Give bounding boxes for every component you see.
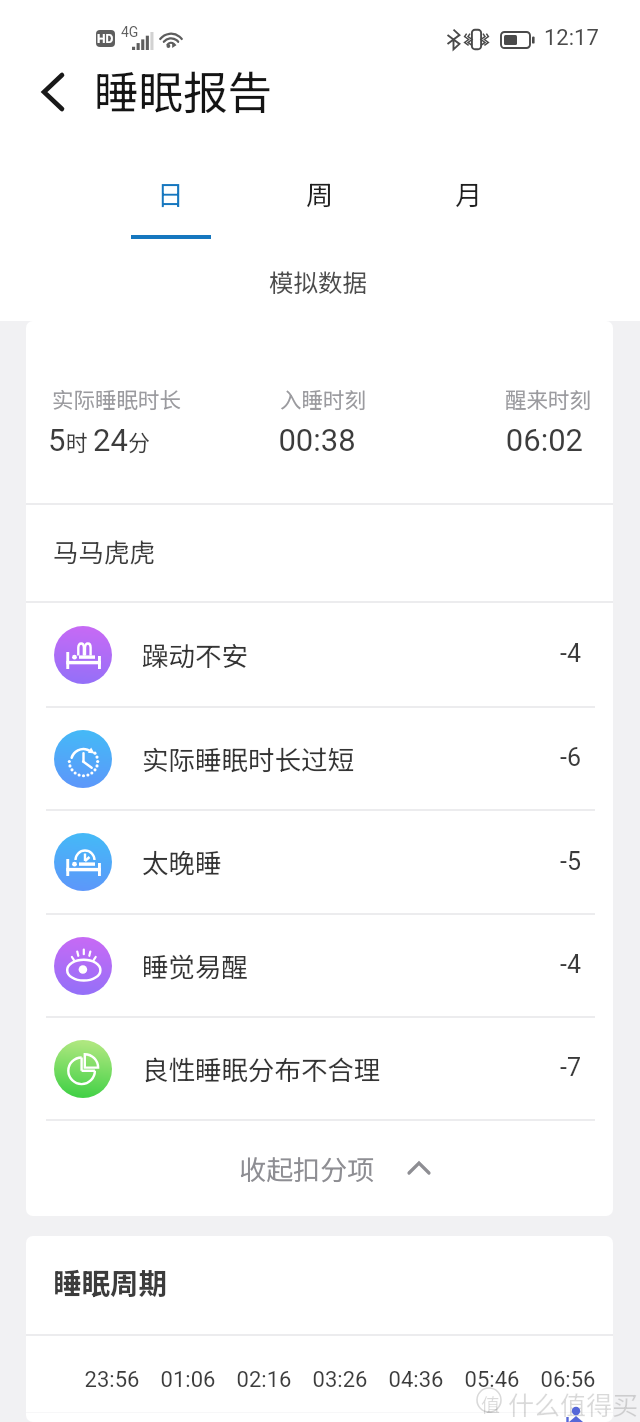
staticText: 实际睡眠时长过短 (142, 739, 354, 777)
staticText: 躁动不安 (142, 635, 248, 673)
staticText: -4 (560, 950, 581, 979)
staticText: 收起扣分项 (239, 1149, 374, 1188)
staticText: 05:46 (454, 1367, 530, 1393)
staticText: 5 (48, 422, 66, 458)
button[interactable]: 太晚睡 (26, 811, 613, 913)
staticText: 周 (306, 174, 333, 213)
staticText: 睡觉易醒 (142, 946, 248, 984)
button[interactable]: 实际睡眠时长过短 (26, 708, 613, 809)
staticText: -7 (560, 1053, 581, 1082)
button[interactable]: Back (20, 59, 86, 125)
staticText: 06:56 (530, 1367, 606, 1393)
staticText: 马马虎虎 (53, 532, 156, 569)
button[interactable]: 良性睡眠分布不合理 (26, 1018, 613, 1119)
staticText: 太晚睡 (142, 842, 222, 880)
button[interactable]: 睡觉易醒 (26, 915, 613, 1016)
staticText: 实际睡眠时长 (52, 383, 182, 414)
staticText: 06:02 (449, 422, 583, 458)
staticText: -5 (560, 847, 581, 876)
staticText: 入睡时刻 (280, 383, 367, 414)
staticText: 04:36 (378, 1367, 454, 1393)
staticText: 01:06 (150, 1367, 226, 1393)
staticText: 值 (481, 1390, 501, 1418)
staticText: 醒来时刻 (505, 383, 592, 414)
button[interactable]: 躁动不安 (26, 603, 613, 706)
staticText: 日 (157, 174, 184, 213)
staticText: -6 (560, 743, 581, 772)
staticText: 12:17 (544, 25, 599, 51)
staticText: 睡眠周期 (53, 1261, 168, 1302)
button[interactable]: 周 (245, 160, 394, 250)
button[interactable]: 收起扣分项 (26, 1121, 613, 1216)
staticText: 时 (66, 425, 89, 457)
staticText: HD (97, 32, 114, 46)
staticText: 24 (93, 422, 128, 458)
staticText: 4G (121, 24, 139, 40)
staticText: 02:16 (226, 1367, 302, 1393)
staticText: 良性睡眠分布不合理 (142, 1049, 381, 1087)
staticText: 23:56 (74, 1367, 150, 1393)
staticText: 03:26 (302, 1367, 378, 1393)
staticText: 00:38 (250, 422, 384, 458)
staticText: 睡眠报告 (94, 57, 273, 121)
button[interactable]: 日 (96, 160, 245, 250)
staticText: 月 (455, 174, 482, 213)
button[interactable]: 月 (394, 160, 543, 250)
staticText: 模拟数据 (269, 264, 367, 299)
staticText: -4 (560, 639, 581, 668)
staticText: 什么值得买 (508, 1385, 639, 1422)
staticText: 分 (128, 425, 151, 457)
